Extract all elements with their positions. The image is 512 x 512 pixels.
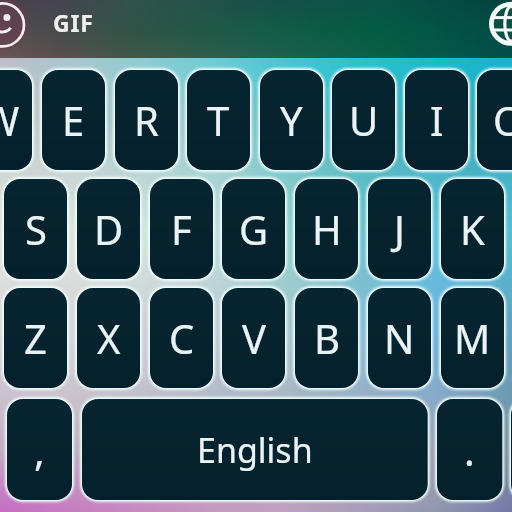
button[interactable]: [506, 394, 512, 505]
button[interactable]: U: [327, 65, 400, 175]
staticText: I: [430, 93, 444, 147]
staticText: R: [134, 93, 159, 147]
button[interactable]: D: [72, 174, 145, 284]
button[interactable]: S: [0, 174, 72, 284]
button[interactable]: I: [400, 65, 473, 175]
staticText: K: [460, 202, 485, 256]
button[interactable]: R: [110, 65, 183, 175]
button[interactable]: B: [290, 283, 363, 393]
button[interactable]: .: [432, 394, 507, 505]
staticText: M: [454, 311, 491, 365]
staticText: GIF: [53, 7, 94, 38]
button[interactable]: N: [363, 283, 436, 393]
staticText: Y: [280, 93, 303, 147]
staticText: F: [171, 202, 192, 256]
staticText: X: [97, 311, 121, 365]
staticText: V: [242, 311, 266, 365]
staticText: J: [394, 202, 405, 256]
button[interactable]: ,: [2, 394, 77, 505]
button[interactable]: H: [290, 174, 363, 284]
staticText: U: [349, 93, 379, 147]
button[interactable]: W: [0, 65, 37, 175]
staticText: C: [169, 311, 195, 365]
button[interactable]: J: [363, 174, 436, 284]
button[interactable]: O: [472, 65, 512, 175]
staticText: S: [25, 202, 47, 256]
staticText: O: [493, 93, 512, 147]
staticText: E: [62, 93, 85, 147]
button[interactable]: K: [436, 174, 509, 284]
button[interactable]: C: [145, 283, 218, 393]
staticText: T: [207, 93, 230, 147]
button[interactable]: Emoji: [0, 1, 26, 47]
button[interactable]: X: [72, 283, 145, 393]
staticText: G: [239, 202, 269, 256]
button[interactable]: V: [217, 283, 290, 393]
staticText: D: [94, 202, 124, 256]
button[interactable]: G: [217, 174, 290, 284]
button[interactable]: M: [436, 283, 509, 393]
staticText: W: [0, 93, 20, 147]
staticText: .: [464, 423, 475, 477]
button[interactable]: Y: [255, 65, 328, 175]
button[interactable]: Z: [0, 283, 72, 393]
staticText: English: [197, 427, 313, 473]
button[interactable]: T: [182, 65, 255, 175]
button[interactable]: Change language: [489, 2, 512, 48]
staticText: N: [384, 311, 415, 365]
button[interactable]: E: [37, 65, 110, 175]
button[interactable]: English: [77, 394, 433, 505]
staticText: ,: [34, 423, 45, 477]
staticText: Z: [24, 311, 47, 365]
button[interactable]: GIF: [44, 0, 102, 44]
staticText: B: [314, 311, 340, 365]
staticText: H: [312, 202, 342, 256]
button[interactable]: F: [145, 174, 218, 284]
